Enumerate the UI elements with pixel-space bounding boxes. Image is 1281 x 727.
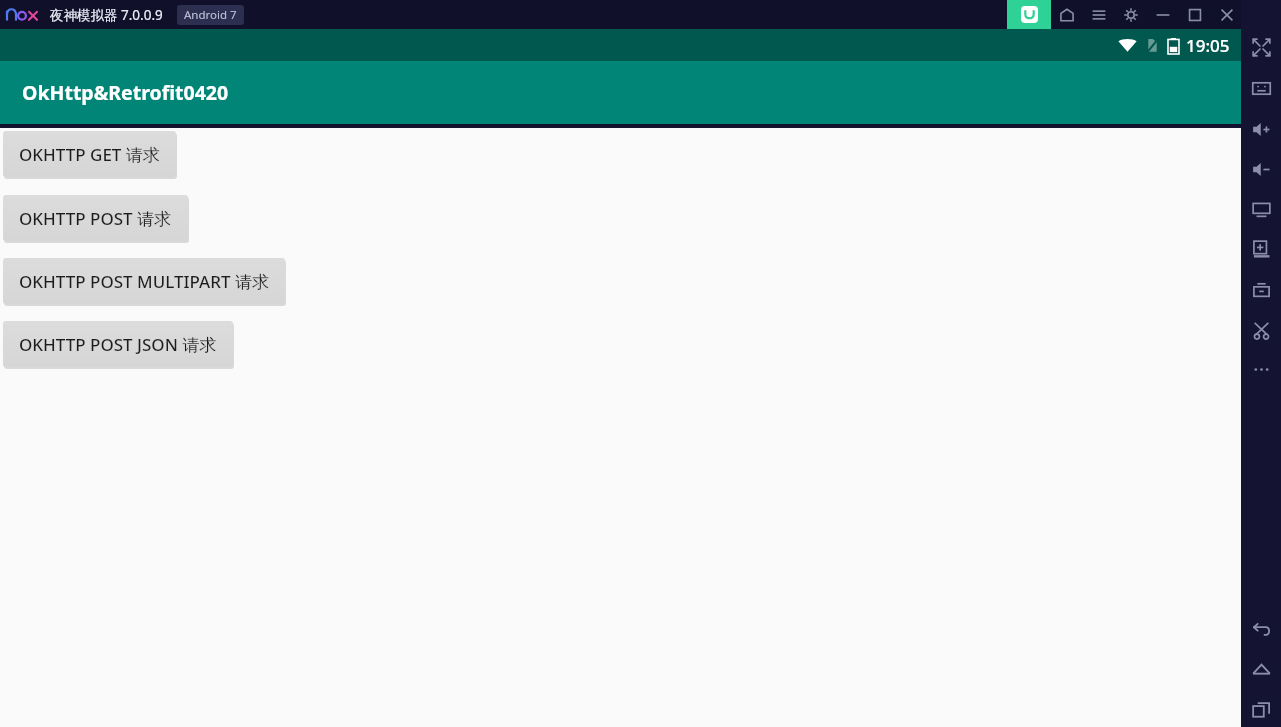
button[interactable]: Skin (1053, 0, 1081, 29)
button[interactable]: Minimize (1149, 0, 1177, 29)
staticText: OKHTTP GET 请求 (19, 143, 160, 166)
staticText: 19:05 (1186, 34, 1230, 57)
button[interactable]: Fullscreen (1245, 31, 1277, 63)
button[interactable]: Maximize (1181, 0, 1209, 29)
staticText: OKHTTP GET 请求 (20, 145, 161, 168)
button[interactable]: More (1245, 353, 1277, 385)
button[interactable]: Screenshot (1245, 314, 1277, 346)
button[interactable]: App tab (1007, 0, 1051, 29)
staticText: OkHttp&Retrofit0420 (22, 79, 229, 106)
button[interactable]: Display (1245, 193, 1277, 225)
button[interactable]: Recents (1245, 693, 1277, 725)
staticText: 夜神模拟器 7.0.0.9 (50, 6, 163, 24)
staticText: OKHTTP POST JSON 请求 (20, 335, 218, 358)
staticText: OKHTTP POST MULTIPART 请求 (20, 272, 270, 295)
staticText: OKHTTP POST 请求 (20, 209, 173, 232)
button[interactable]: Volume down (1245, 153, 1277, 185)
staticText: OKHTTP POST 请求 (19, 207, 172, 230)
button[interactable]: Home (1245, 653, 1277, 685)
button[interactable]: OKHTTP POST 请求 (3, 195, 188, 241)
button[interactable]: OKHTTP GET 请求 (3, 131, 176, 177)
button[interactable]: Settings (1117, 0, 1145, 29)
button[interactable]: Close (1213, 0, 1241, 29)
staticText: Android 7 (184, 7, 237, 23)
staticText: OKHTTP POST MULTIPART 请求 (19, 270, 269, 293)
button[interactable]: Keyboard (1245, 72, 1277, 104)
button[interactable]: Menu (1085, 0, 1113, 29)
button[interactable]: OKHTTP POST JSON 请求 (3, 321, 233, 367)
staticText: OKHTTP POST JSON 请求 (19, 333, 217, 356)
button[interactable]: Back (1245, 613, 1277, 645)
button[interactable]: Multi drive (1245, 273, 1277, 305)
button[interactable]: Volume up (1245, 113, 1277, 145)
button[interactable]: Install APK (1245, 233, 1277, 265)
button[interactable]: OKHTTP POST MULTIPART 请求 (3, 258, 285, 304)
